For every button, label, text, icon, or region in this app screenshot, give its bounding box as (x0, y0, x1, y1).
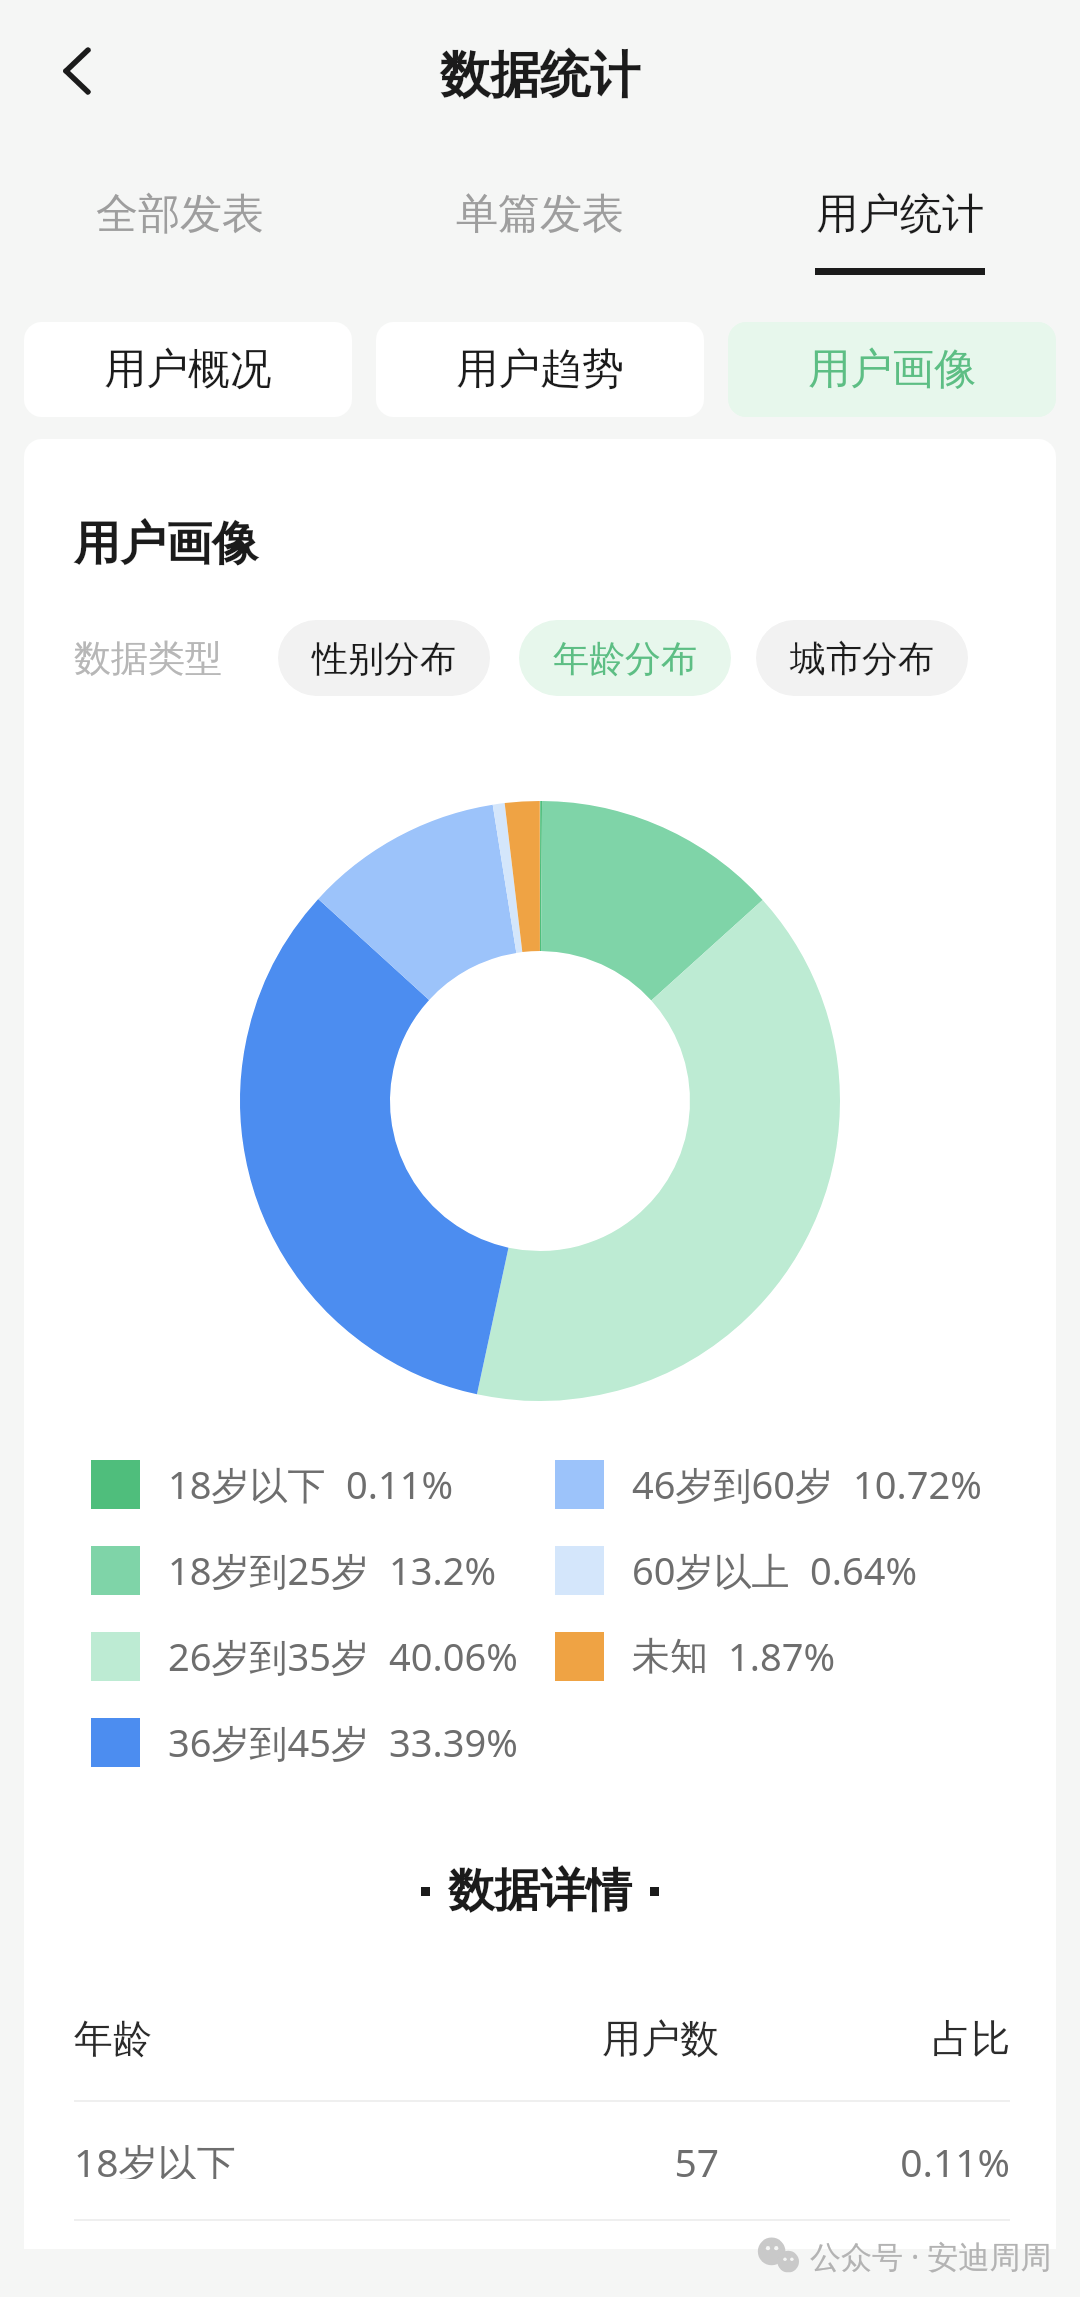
button[interactable]: 性别分布 (278, 620, 490, 696)
staticText: 26岁到35岁 (168, 1630, 369, 1682)
staticText: 单篇发表 (456, 188, 624, 241)
staticText: 全部发表 (96, 188, 264, 241)
staticText: 0.11% (346, 1458, 453, 1510)
staticText: 60岁以上 (632, 1544, 790, 1596)
staticText: 1.87% (728, 1630, 835, 1682)
staticText: 用户数 (357, 2014, 719, 2058)
staticText: 用户画像 (74, 515, 258, 573)
button[interactable]: Back (36, 29, 120, 113)
button[interactable]: 18岁以下 (74, 2135, 1010, 2179)
button[interactable]: 单篇发表 (360, 188, 720, 288)
staticText: 33.39% (389, 1716, 518, 1768)
staticText: 用户画像 (808, 343, 976, 396)
staticText: 用户趋势 (456, 343, 624, 396)
staticText: 0.64% (810, 1544, 917, 1596)
staticText: 18岁以下 (168, 1458, 326, 1510)
staticText: 36岁到45岁 (168, 1716, 369, 1768)
staticText: 用户统计 (816, 188, 984, 241)
staticText: 18岁以下 (74, 2135, 354, 2179)
staticText: 18岁到25岁 (168, 1544, 369, 1596)
button[interactable]: 全部发表 (0, 188, 360, 288)
staticText: 城市分布 (790, 636, 934, 681)
button[interactable]: 年龄分布 (519, 620, 731, 696)
staticText: 0.11% (719, 2135, 1010, 2179)
staticText: 数据类型 (74, 635, 222, 682)
staticText: 57 (354, 2135, 719, 2179)
staticText: 公众号 · 安迪周周 (810, 2235, 1052, 2277)
staticText: 占比 (719, 2014, 1010, 2058)
staticText: 46岁到60岁 (632, 1458, 833, 1510)
button[interactable]: 城市分布 (756, 620, 968, 696)
staticText: 13.2% (389, 1544, 496, 1596)
button[interactable]: 用户趋势 (376, 322, 704, 417)
staticText: 40.06% (389, 1630, 518, 1682)
staticText: 10.72% (853, 1458, 982, 1510)
staticText: 数据统计 (440, 44, 640, 107)
button[interactable]: 用户统计 (720, 188, 1080, 288)
button[interactable]: 用户概况 (24, 322, 352, 417)
button[interactable]: 年龄 (74, 2014, 1010, 2058)
staticText: 用户概况 (104, 343, 272, 396)
staticText: 数据详情 (448, 1862, 632, 1920)
staticText: 年龄 (74, 2014, 357, 2058)
staticText: 性别分布 (312, 636, 456, 681)
button[interactable]: 用户画像 (728, 322, 1056, 417)
staticText: 年龄分布 (553, 636, 697, 681)
staticText: 未知 (632, 1632, 708, 1680)
